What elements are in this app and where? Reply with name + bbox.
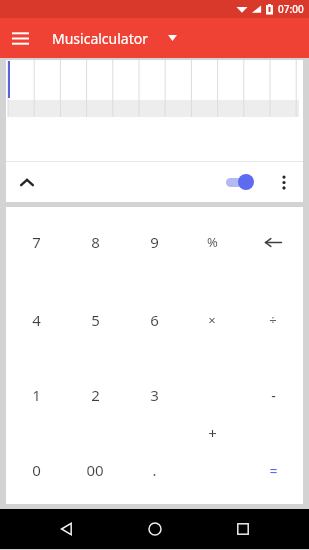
staticText: 1	[32, 385, 41, 405]
button[interactable]: 9	[132, 220, 176, 264]
button[interactable]: 6	[132, 298, 176, 342]
button[interactable]: Back	[44, 509, 88, 549]
button[interactable]: .	[132, 448, 176, 492]
staticText: 0	[32, 460, 41, 480]
staticText: ÷	[269, 311, 277, 329]
button[interactable]: +	[190, 411, 234, 455]
button[interactable]: 4	[14, 298, 58, 342]
button[interactable]: ÷	[251, 298, 295, 342]
staticText: -	[271, 386, 276, 405]
button[interactable]: More options	[268, 166, 300, 198]
button[interactable]: Toggle audio	[220, 166, 268, 198]
button[interactable]: Musicalculator	[52, 29, 148, 48]
staticText: 07:00	[278, 2, 304, 16]
staticText: 00	[86, 460, 104, 480]
button[interactable]: Choose sheet	[160, 26, 184, 50]
staticText: ×	[208, 311, 216, 329]
staticText: =	[269, 461, 278, 480]
staticText: 8	[91, 232, 100, 252]
button[interactable]: ×	[190, 298, 234, 342]
button[interactable]: 1	[14, 373, 58, 417]
button[interactable]: 0	[14, 448, 58, 492]
button[interactable]: Collapse keyboard	[6, 162, 48, 202]
staticText: 3	[150, 385, 159, 405]
button[interactable]: -	[251, 373, 295, 417]
button[interactable]: Open navigation drawer	[0, 18, 40, 58]
button[interactable]: 3	[132, 373, 176, 417]
button[interactable]: 00	[73, 448, 117, 492]
button[interactable]: 7	[14, 220, 58, 264]
button[interactable]: 2	[73, 373, 117, 417]
staticText: 4	[32, 310, 41, 330]
button[interactable]: %	[190, 220, 234, 264]
staticText: %	[207, 233, 218, 251]
staticText: 7	[32, 232, 41, 252]
button[interactable]: Recent apps	[221, 509, 265, 549]
button[interactable]: 8	[73, 220, 117, 264]
button[interactable]: =	[251, 448, 295, 492]
staticText: 6	[150, 310, 159, 330]
staticText: +	[208, 423, 217, 443]
staticText: 9	[150, 232, 159, 252]
staticText: .	[152, 460, 157, 480]
staticText: 5	[91, 310, 100, 330]
button[interactable]: Home	[133, 509, 177, 549]
button[interactable]: 5	[73, 298, 117, 342]
staticText: 2	[91, 385, 100, 405]
button[interactable]: Backspace	[251, 220, 295, 264]
